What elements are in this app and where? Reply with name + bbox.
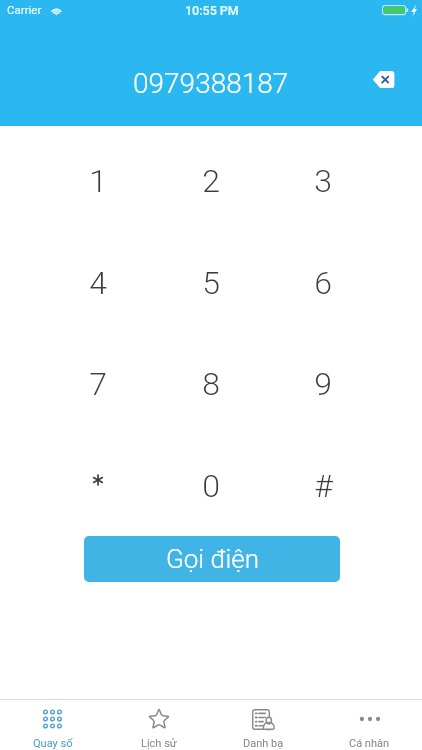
staticText: 3 (314, 162, 332, 200)
staticText: 5 (202, 264, 220, 302)
staticText: Carrier (7, 3, 42, 16)
staticText: 10:55 PM (185, 3, 239, 18)
button[interactable]: Gọi điện (84, 536, 340, 582)
staticText: Quay số (33, 737, 73, 750)
staticText: 9 (314, 365, 332, 403)
button[interactable]: 4 (50, 240, 146, 326)
staticText: 7 (89, 365, 107, 403)
button[interactable]: Lịch sử (106, 700, 211, 750)
button[interactable]: Quay số (0, 700, 105, 750)
staticText: 6 (314, 264, 332, 302)
staticText: 1 (89, 162, 107, 200)
staticText: Gọi điện (166, 544, 259, 574)
button[interactable]: 7 (50, 341, 146, 427)
staticText: Lịch sử (141, 737, 177, 750)
button[interactable]: 0 (163, 443, 259, 529)
staticText: 4 (89, 264, 107, 302)
staticText: 8 (202, 365, 220, 403)
button[interactable]: 1 (50, 138, 146, 224)
button[interactable]: 6 (275, 240, 371, 326)
staticText: Cá nhân (349, 737, 390, 750)
button[interactable]: 8 (163, 341, 259, 427)
button[interactable]: 9 (275, 341, 371, 427)
staticText: 0 (202, 467, 220, 505)
staticText: # (314, 467, 333, 505)
button[interactable]: 3 (275, 138, 371, 224)
button[interactable]: Cá nhân (317, 700, 422, 750)
button[interactable]: Backspace (366, 65, 400, 95)
button[interactable]: # (275, 443, 371, 529)
button[interactable]: Danh bạ (211, 700, 316, 750)
button[interactable]: 2 (163, 138, 259, 224)
button[interactable] (50, 443, 146, 529)
button[interactable]: 5 (163, 240, 259, 326)
staticText: 0979388187 (133, 67, 289, 100)
staticText: Danh bạ (243, 737, 284, 750)
staticText: 2 (202, 162, 220, 200)
